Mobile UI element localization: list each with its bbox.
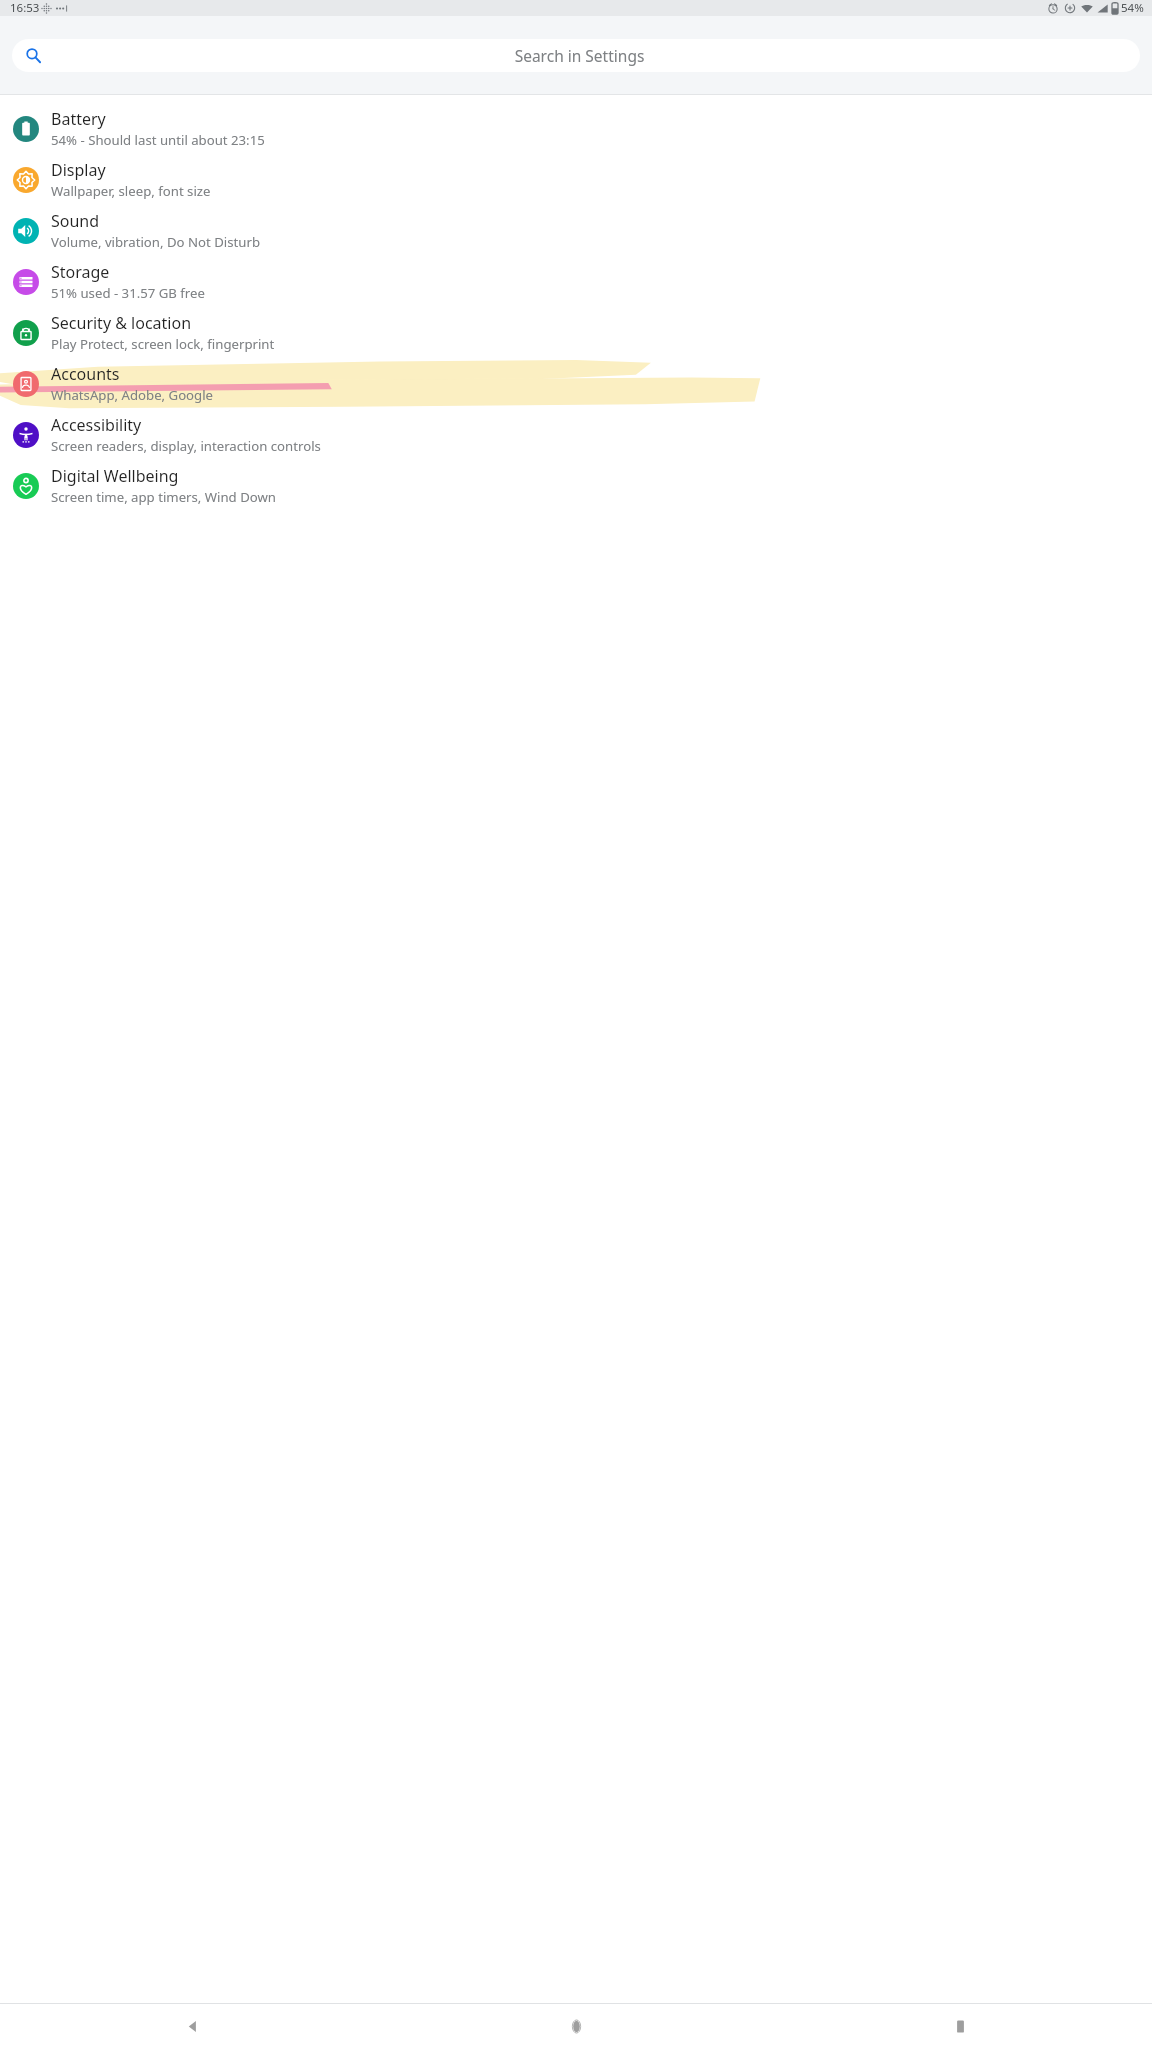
staticText: Screen time, app timers, Wind Down (51, 488, 277, 506)
button[interactable]: Display (0, 154, 1152, 205)
staticText: Digital Wellbeing (51, 465, 179, 487)
button[interactable]: Home (384, 2004, 768, 2048)
staticText: Security & location (51, 312, 192, 334)
staticText: Play Protect, screen lock, fingerprint (51, 335, 275, 353)
button[interactable]: Accessibility (0, 409, 1152, 460)
button[interactable]: Storage (0, 256, 1152, 307)
staticText: Display (51, 159, 106, 181)
staticText: 54% - Should last until about 23:15 (51, 131, 265, 149)
staticText: Battery (51, 108, 106, 130)
staticText: 16:53 (10, 0, 40, 16)
staticText: WhatsApp, Adobe, Google (51, 386, 214, 404)
button[interactable]: Back (0, 2004, 384, 2048)
staticText: Screen readers, display, interaction con… (51, 437, 321, 455)
staticText: 54% (1121, 0, 1144, 16)
staticText: Wallpaper, sleep, font size (51, 182, 211, 200)
button[interactable]: Accounts (0, 358, 1152, 409)
staticText: Search in Settings (30, 45, 1129, 66)
button[interactable]: Security & location (0, 307, 1152, 358)
button[interactable]: Recent apps (768, 2004, 1152, 2048)
button[interactable]: Digital Wellbeing (0, 460, 1152, 511)
button[interactable]: Search in Settings (12, 39, 1140, 72)
staticText: Volume, vibration, Do Not Disturb (51, 233, 260, 251)
staticText: Accessibility (51, 414, 142, 436)
staticText: Sound (51, 210, 100, 232)
button[interactable]: Battery (0, 103, 1152, 154)
staticText: 51% used - 31.57 GB free (51, 284, 205, 302)
staticText: Storage (51, 261, 110, 283)
staticText: Accounts (51, 363, 120, 385)
button[interactable]: Sound (0, 205, 1152, 256)
